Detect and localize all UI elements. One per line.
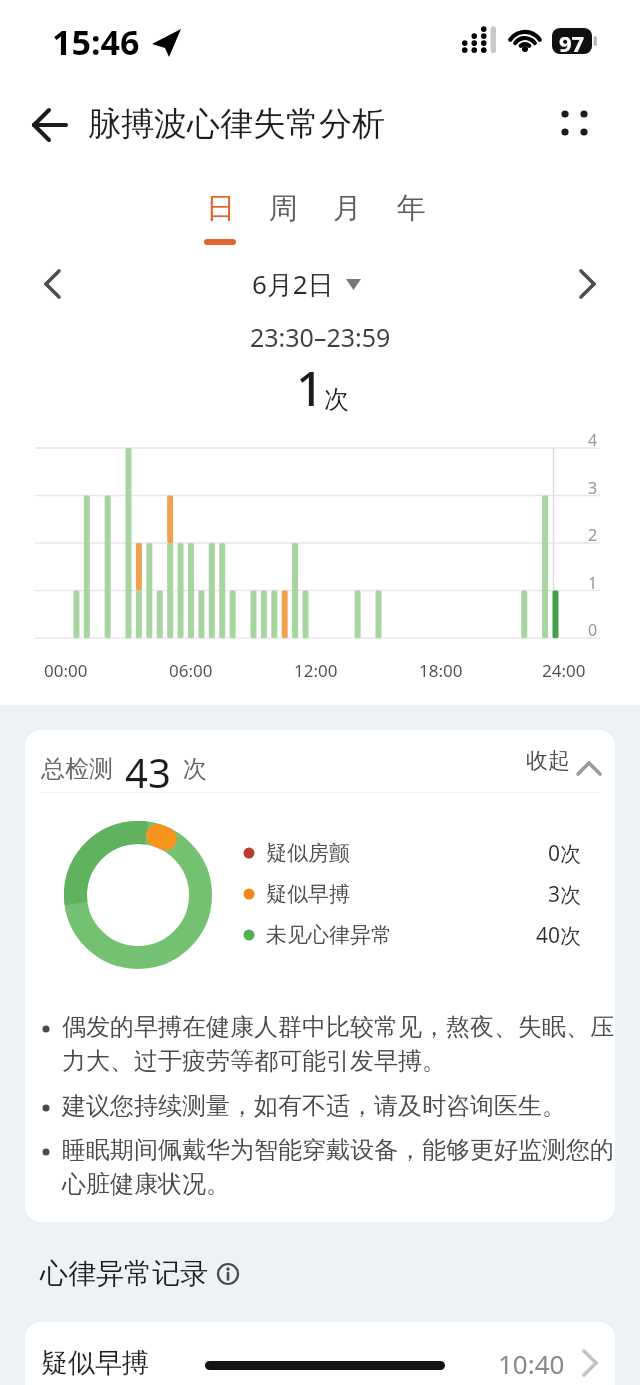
staticText: 00:00: [44, 659, 88, 682]
staticText: 6月2日: [252, 266, 334, 302]
button[interactable]: [22, 103, 74, 147]
staticText: 40次: [536, 921, 582, 950]
staticText: 偶发的早搏在健康人群中比较常见，熬夜、失眠、压力大、过于疲劳等都可能引发早搏。: [62, 1012, 614, 1077]
staticText: 24:00: [542, 659, 586, 682]
staticText: 2: [588, 524, 598, 546]
staticText: 心律异常记录: [40, 1256, 208, 1291]
button[interactable]: 日: [190, 182, 250, 234]
staticText: 4: [588, 429, 598, 451]
staticText: 年: [397, 190, 426, 227]
staticText: 06:00: [169, 659, 213, 682]
staticText: 疑似房颤: [266, 840, 350, 866]
button[interactable]: [210, 1256, 246, 1292]
staticText: 43: [125, 745, 171, 793]
staticText: 未见心律异常: [266, 922, 392, 948]
staticText: 18:00: [419, 659, 463, 682]
staticText: 1: [588, 572, 598, 594]
staticText: 次: [324, 384, 349, 415]
staticText: 脉搏波心律失常分析: [88, 103, 385, 145]
staticText: 23:30–23:59: [250, 320, 391, 354]
button[interactable]: [30, 262, 74, 306]
button[interactable]: 收起: [500, 747, 610, 791]
staticText: 次: [183, 754, 207, 784]
staticText: 1: [296, 355, 324, 415]
staticText: 97: [559, 28, 585, 54]
staticText: 收起: [526, 747, 570, 775]
button[interactable]: 周: [253, 182, 313, 234]
staticText: 12:00: [294, 659, 338, 682]
staticText: 15:46: [52, 19, 140, 65]
staticText: 睡眠期间佩戴华为智能穿戴设备，能够更好监测您的心脏健康状况。: [62, 1135, 614, 1200]
button[interactable]: [552, 101, 598, 147]
staticText: 疑似早搏: [266, 881, 350, 907]
staticText: 建议您持续测量，如有不适，请及时咨询医生。: [62, 1091, 566, 1121]
staticText: 周: [269, 190, 298, 227]
staticText: 总检测: [41, 754, 113, 784]
staticText: 0次: [548, 839, 582, 868]
button[interactable]: 月: [317, 182, 377, 234]
button[interactable]: [25, 1322, 615, 1385]
button[interactable]: [566, 262, 610, 306]
staticText: 月: [333, 190, 362, 227]
staticText: 日: [206, 190, 235, 227]
staticText: 3次: [548, 880, 582, 909]
button[interactable]: 年: [381, 182, 441, 234]
button[interactable]: 6月2日: [226, 262, 386, 306]
staticText: 疑似早搏: [41, 1346, 149, 1380]
staticText: 0: [588, 619, 598, 641]
staticText: 10:40: [498, 1346, 565, 1381]
staticText: 3: [588, 477, 598, 499]
